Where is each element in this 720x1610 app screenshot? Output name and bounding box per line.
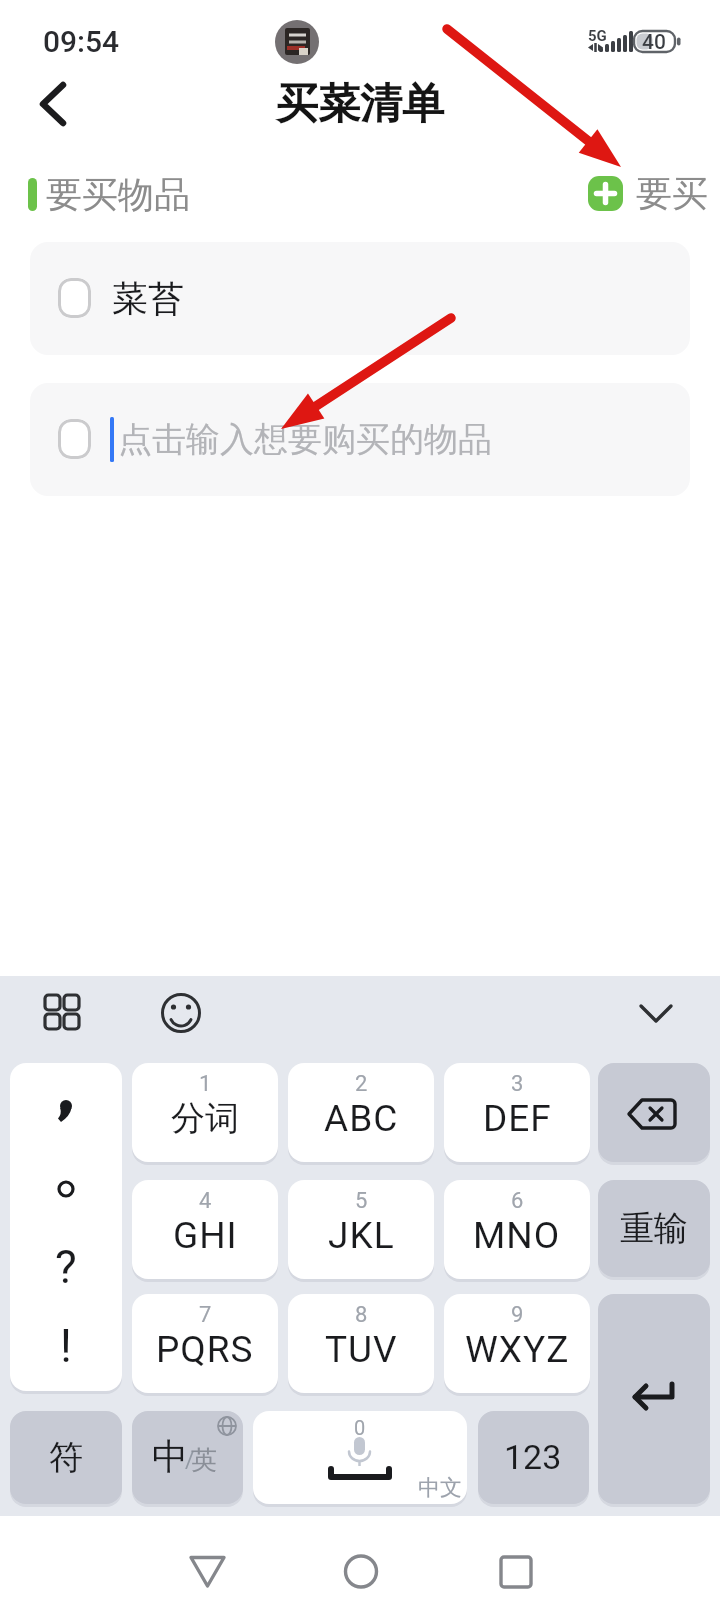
- button[interactable]: [35, 985, 91, 1041]
- button[interactable]: [10, 1411, 122, 1504]
- staticText: WXYZ: [465, 1328, 570, 1371]
- staticText: 2: [355, 1071, 368, 1097]
- button[interactable]: [444, 1063, 590, 1162]
- button[interactable]: [175, 1545, 239, 1600]
- button[interactable]: [132, 1294, 278, 1393]
- button[interactable]: [30, 242, 690, 355]
- button[interactable]: [598, 1294, 710, 1504]
- button[interactable]: [598, 1180, 710, 1277]
- button[interactable]: [132, 1063, 278, 1162]
- button[interactable]: [288, 1294, 434, 1393]
- staticText: 符: [49, 1436, 83, 1479]
- button[interactable]: [444, 1294, 590, 1393]
- staticText: JKL: [328, 1214, 395, 1257]
- button[interactable]: [478, 1411, 589, 1504]
- button[interactable]: [58, 419, 91, 459]
- staticText: GHI: [173, 1214, 238, 1257]
- staticText: 中文: [418, 1474, 462, 1502]
- staticText: 8: [355, 1302, 368, 1328]
- staticText: 菜苔: [112, 276, 184, 321]
- staticText: DEF: [483, 1097, 552, 1140]
- button[interactable]: [132, 1411, 243, 1504]
- staticText: 5G: [588, 27, 607, 45]
- button[interactable]: [288, 1180, 434, 1279]
- staticText: 123: [504, 1437, 562, 1477]
- staticText: 要买物品: [46, 172, 190, 217]
- staticText: 重输: [620, 1207, 688, 1250]
- staticText: 中: [152, 1434, 188, 1479]
- staticText: !: [60, 1319, 72, 1373]
- button[interactable]: [58, 278, 91, 318]
- staticText: 要买: [636, 171, 708, 216]
- staticText: ?: [55, 1240, 77, 1294]
- staticText: /: [185, 1448, 195, 1474]
- button[interactable]: [275, 20, 319, 64]
- button[interactable]: [588, 176, 623, 211]
- staticText: 7: [199, 1302, 212, 1328]
- button[interactable]: [288, 1063, 434, 1162]
- staticText: 3: [511, 1071, 524, 1097]
- staticText: 1: [199, 1071, 212, 1097]
- button[interactable]: [329, 1545, 393, 1600]
- staticText: 分词: [171, 1097, 239, 1140]
- staticText: MNO: [473, 1214, 561, 1257]
- button[interactable]: [30, 383, 690, 496]
- staticText: 6: [511, 1188, 524, 1214]
- staticText: 5: [355, 1188, 368, 1214]
- staticText: 0: [354, 1416, 366, 1439]
- staticText: ABC: [324, 1097, 399, 1140]
- button[interactable]: [10, 1063, 122, 1391]
- staticText: 9: [511, 1302, 524, 1328]
- staticText: 点击输入想要购买的物品: [118, 418, 492, 461]
- staticText: 40: [642, 30, 666, 55]
- button[interactable]: [253, 1411, 467, 1504]
- button[interactable]: [132, 1180, 278, 1279]
- button[interactable]: [28, 78, 80, 130]
- button[interactable]: [153, 985, 209, 1041]
- staticText: TUV: [325, 1328, 398, 1371]
- button[interactable]: [444, 1180, 590, 1279]
- button[interactable]: [598, 1063, 710, 1162]
- staticText: PQRS: [156, 1328, 254, 1371]
- staticText: 买菜清单: [276, 78, 444, 131]
- staticText: 09:54: [43, 24, 120, 59]
- staticText: 英: [191, 1444, 217, 1477]
- button[interactable]: [484, 1545, 548, 1600]
- staticText: 4: [199, 1188, 212, 1214]
- button[interactable]: [628, 990, 684, 1036]
